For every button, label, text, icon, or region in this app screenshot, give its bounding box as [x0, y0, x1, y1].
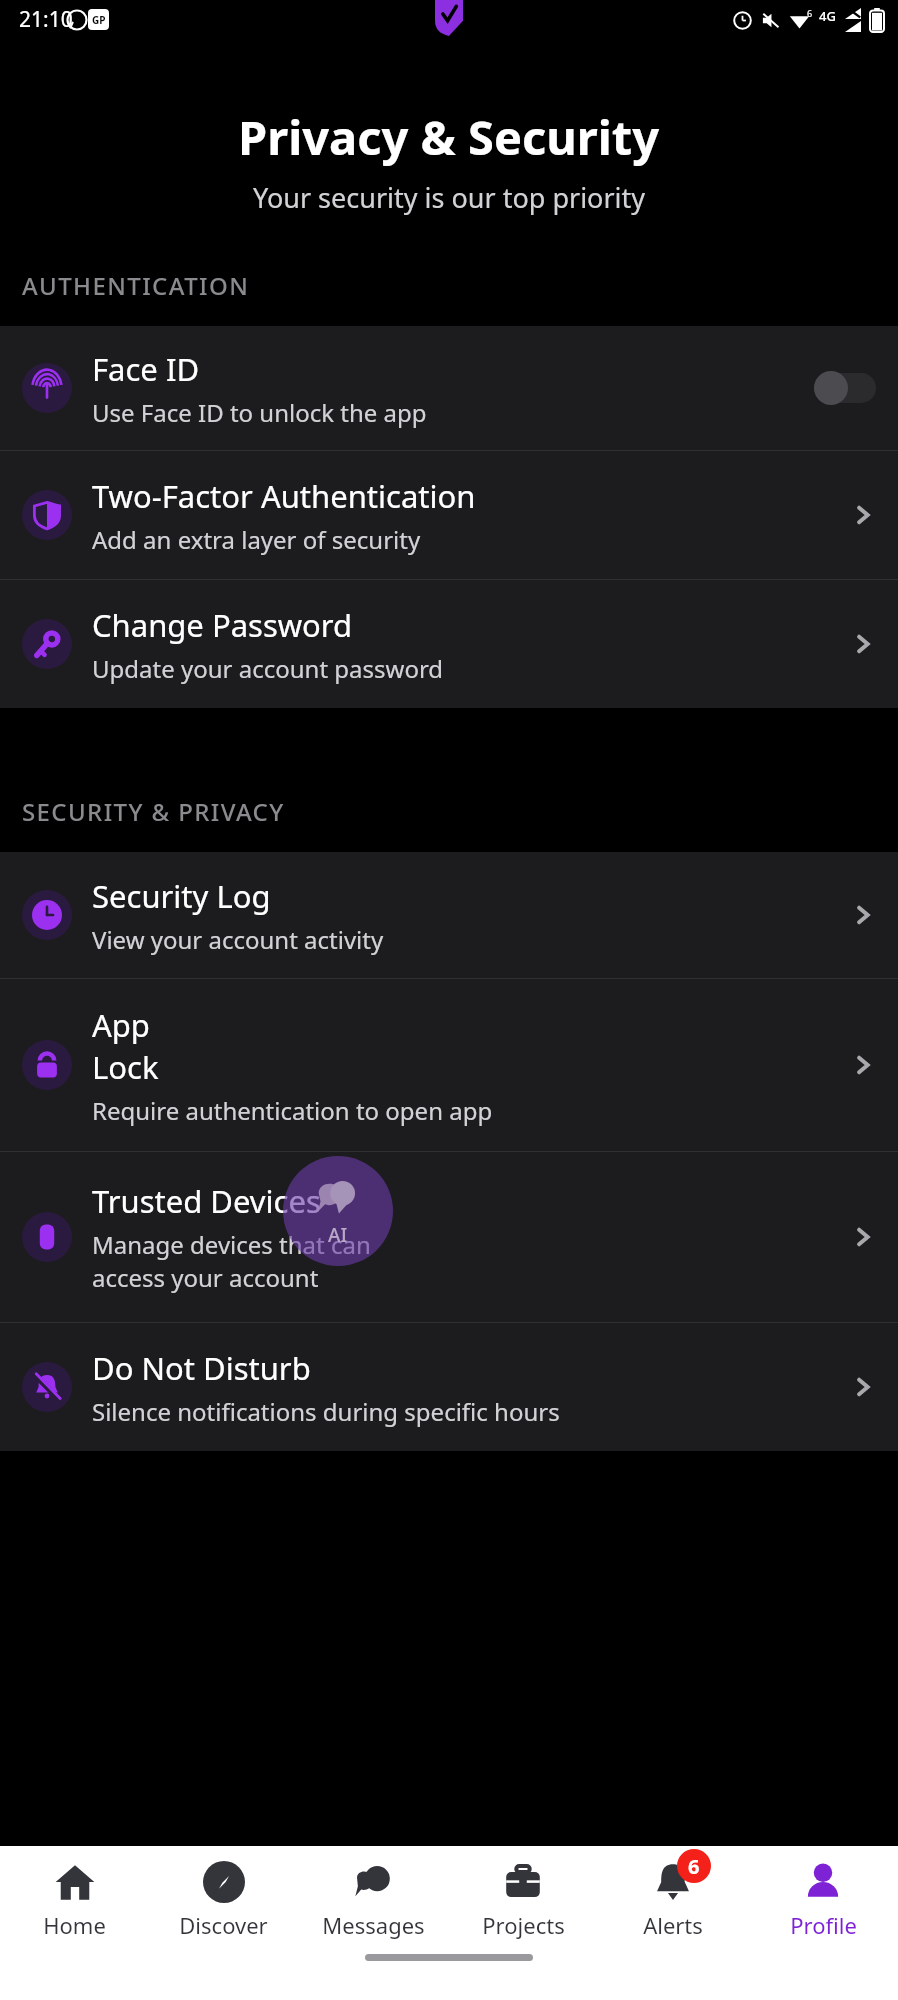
staticText: Alerts [643, 1910, 703, 1940]
staticText: 4G [819, 7, 836, 25]
staticText: Projects [482, 1910, 565, 1940]
button[interactable]: Home [0, 1846, 149, 1954]
button[interactable]: Trusted Devices [0, 1152, 898, 1322]
other: Open [850, 631, 876, 657]
staticText: AI [328, 1222, 348, 1248]
other: Open [850, 502, 876, 528]
staticText: Messages [322, 1910, 425, 1940]
button[interactable]: Change Password [0, 580, 898, 708]
button[interactable]: Projects [448, 1846, 598, 1954]
staticText: View your account activity [92, 923, 384, 956]
staticText: Manage devices that can access your acco… [92, 1228, 382, 1294]
staticText: GP [92, 13, 106, 27]
staticText: Trusted Devices [92, 1180, 321, 1222]
staticText: AUTHENTICATION [22, 269, 250, 302]
staticText: Privacy & Security [238, 105, 660, 169]
staticText: Face ID [92, 348, 200, 390]
other: Open [850, 1374, 876, 1400]
staticText: Use Face ID to unlock the app [92, 396, 427, 429]
other: Open [850, 902, 876, 928]
staticText: Your security is our top priority [253, 179, 646, 216]
button[interactable]: Face ID toggle [814, 371, 876, 405]
other: Open [850, 1224, 876, 1250]
button[interactable]: Face ID [0, 326, 898, 450]
staticText: Change Password [92, 604, 353, 646]
other: Open [850, 1052, 876, 1078]
staticText: Two-Factor Authentication [92, 475, 476, 517]
staticText: Security Log [92, 875, 271, 917]
staticText: 21:10 [19, 5, 73, 34]
button[interactable]: Do Not Disturb [0, 1323, 898, 1451]
button[interactable]: App Lock [0, 979, 898, 1151]
staticText: SECURITY & PRIVACY [22, 795, 285, 828]
staticText: Home [43, 1910, 106, 1940]
button[interactable]: Profile [748, 1846, 898, 1954]
button[interactable]: Discover [149, 1846, 298, 1954]
button[interactable]: 6 [598, 1846, 748, 1954]
staticText: App Lock [92, 1004, 202, 1088]
staticText: 6 [688, 1853, 700, 1880]
button[interactable]: Security Log [0, 852, 898, 978]
button[interactable]: AI assistant [283, 1156, 393, 1266]
button[interactable]: Messages [298, 1846, 448, 1954]
staticText: 6 [807, 7, 813, 19]
staticText: Discover [179, 1910, 268, 1940]
staticText: Profile [790, 1910, 857, 1940]
staticText: Require authentication to open app [92, 1094, 493, 1127]
staticText: Add an extra layer of security [92, 523, 421, 556]
staticText: Update your account password [92, 652, 444, 685]
staticText: Do Not Disturb [92, 1347, 311, 1389]
staticText: Silence notifications during specific ho… [92, 1395, 560, 1428]
button[interactable]: Two-Factor Authentication [0, 451, 898, 579]
